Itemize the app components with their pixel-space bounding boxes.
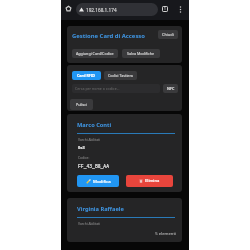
staticText: Card RFID xyxy=(77,73,96,78)
button[interactable]: Card RFID xyxy=(72,71,101,80)
button[interactable]: Modifica xyxy=(77,175,119,187)
button[interactable]: Chiudi xyxy=(158,30,178,39)
staticText: Pulisci xyxy=(76,102,87,107)
staticText: Cerca per nome o codice... xyxy=(75,86,120,91)
button[interactable]: NFC xyxy=(163,84,178,93)
staticText: Salva Modifiche xyxy=(127,51,155,56)
button[interactable]: Salva Modifiche xyxy=(122,49,160,58)
staticText: Chiudi xyxy=(162,32,174,37)
button[interactable]: Cerca per nome o codice... xyxy=(72,84,160,93)
button[interactable]: Elimina xyxy=(126,175,173,187)
staticText: NFC xyxy=(167,86,175,91)
staticText: Codice: xyxy=(78,155,90,159)
staticText: Gestione Card di Accesso xyxy=(72,32,145,40)
button[interactable]: 192.168.1.174 xyxy=(76,3,158,16)
staticText: Codici Tastiera xyxy=(108,73,133,78)
staticText: FF_43_B8_AA xyxy=(78,163,109,169)
staticText: 192.168.1.174 xyxy=(86,7,117,13)
staticText: Virginia Raffaele xyxy=(77,205,124,213)
button[interactable]: Tabs xyxy=(159,3,171,15)
staticText: Marco Conti xyxy=(77,121,112,129)
button[interactable]: More options xyxy=(174,3,186,15)
button[interactable]: Home xyxy=(63,3,74,14)
button[interactable]: Pulisci xyxy=(70,99,93,110)
staticText: Varchi Abilitati xyxy=(78,137,101,141)
staticText: Varchi Abilitati xyxy=(78,221,101,225)
staticText: 5 elementi xyxy=(73,231,176,237)
staticText: 1 xyxy=(164,7,166,11)
staticText: Elimina xyxy=(145,178,160,184)
button[interactable]: Aggiungi Card/Codice xyxy=(72,49,118,58)
staticText: 0x3 xyxy=(78,145,85,150)
button[interactable]: Codici Tastiera xyxy=(104,71,137,80)
staticText: Modifica xyxy=(93,178,111,184)
staticText: Aggiungi Card/Codice xyxy=(76,51,114,56)
